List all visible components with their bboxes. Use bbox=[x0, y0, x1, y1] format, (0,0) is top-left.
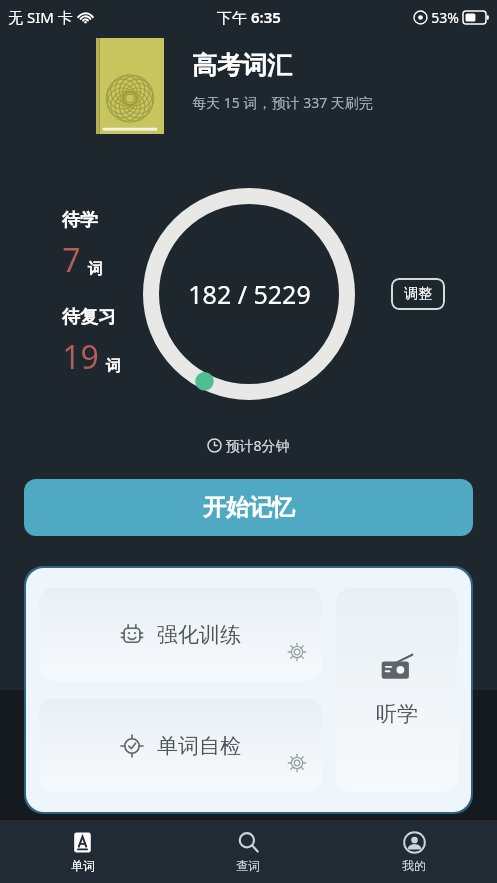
staticText: 每天 15 词，预计 337 天刷完 bbox=[192, 93, 373, 112]
staticText: 词 bbox=[88, 260, 103, 279]
staticText: 待复习 bbox=[62, 306, 116, 329]
button[interactable]: 设置 强化训练 bbox=[286, 641, 308, 663]
button[interactable]: 开始记忆 bbox=[24, 479, 473, 536]
staticText: 53% bbox=[431, 8, 459, 27]
staticText: 开始记忆 bbox=[203, 493, 295, 522]
button[interactable]: 单词 bbox=[0, 820, 165, 883]
staticText: 强化训练 bbox=[157, 622, 241, 648]
staticText: 19 bbox=[62, 335, 99, 379]
staticText: 预计8分钟 bbox=[225, 436, 290, 455]
staticText: 查词 bbox=[236, 858, 260, 873]
button[interactable]: 查词 bbox=[165, 820, 331, 883]
button[interactable]: 强化训练 bbox=[39, 588, 322, 681]
staticText: 调整 bbox=[404, 285, 432, 303]
button[interactable]: 调整 bbox=[391, 278, 445, 310]
staticText: 单词 bbox=[71, 858, 95, 873]
staticText: 待学 bbox=[62, 209, 98, 232]
staticText: 单词自检 bbox=[157, 733, 241, 759]
staticText: 词 bbox=[106, 357, 121, 376]
staticText: 无 SIM 卡 bbox=[8, 7, 73, 27]
staticText: 听学 bbox=[376, 701, 418, 727]
staticText: 7 bbox=[62, 238, 81, 282]
staticText: 下午 6:35 bbox=[217, 7, 281, 27]
staticText: 我的 bbox=[402, 858, 426, 873]
staticText: 182 / 5229 bbox=[188, 277, 311, 311]
button[interactable]: 听学 bbox=[336, 588, 458, 792]
button[interactable]: 我的 bbox=[331, 820, 497, 883]
button[interactable]: 设置 单词自检 bbox=[286, 752, 308, 774]
button[interactable]: 单词自检 bbox=[39, 699, 322, 792]
staticText: 高考词汇 bbox=[192, 50, 292, 81]
